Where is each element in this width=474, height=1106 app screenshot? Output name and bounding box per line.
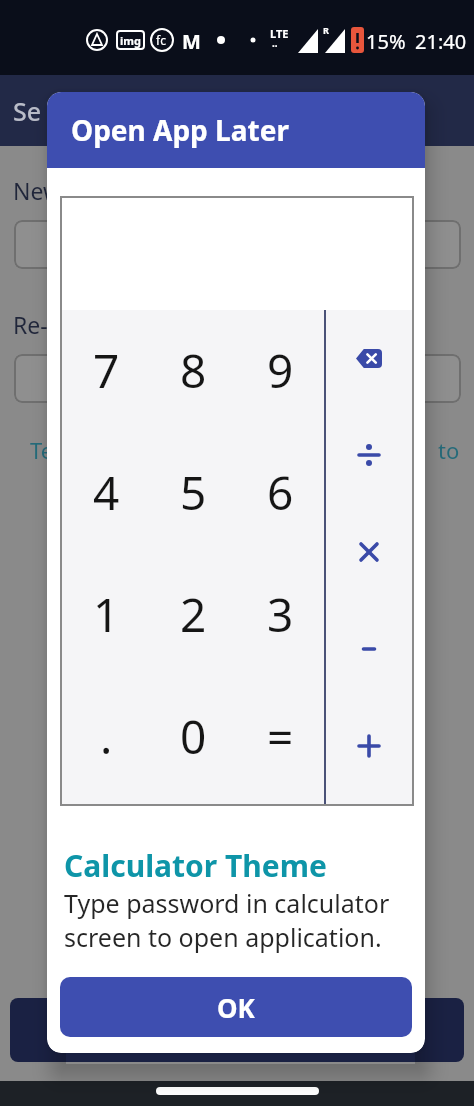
- staticText: Re-: [13, 309, 48, 340]
- button[interactable]: =: [237, 675, 324, 797]
- staticText: 9: [267, 339, 294, 402]
- staticText: ..: [272, 36, 278, 50]
- button[interactable]: 0: [150, 675, 237, 797]
- staticText: Open App Later: [71, 111, 289, 149]
- staticText: OK: [217, 990, 255, 1025]
- button[interactable]: 8: [150, 310, 237, 431]
- button[interactable]: 2: [150, 553, 237, 675]
- staticText: 21:40: [415, 28, 467, 55]
- staticText: 0: [180, 705, 207, 768]
- button[interactable]: 6: [237, 431, 324, 553]
- button[interactable]: [326, 310, 412, 406]
- staticText: 7: [93, 339, 120, 402]
- button[interactable]: 5: [150, 431, 237, 553]
- staticText: 15%: [366, 28, 406, 55]
- button[interactable]: 3: [237, 553, 324, 675]
- staticText: img: [120, 33, 141, 48]
- button[interactable]: [326, 697, 412, 794]
- staticText: 8: [180, 339, 207, 402]
- staticText: M: [182, 28, 201, 55]
- button[interactable]: 7: [62, 310, 150, 431]
- staticText: 2: [180, 583, 207, 646]
- staticText: Type password in calculator screen to op…: [64, 886, 390, 954]
- button[interactable]: [326, 503, 412, 600]
- staticText: fc: [156, 32, 166, 48]
- staticText: 4: [93, 461, 120, 524]
- button[interactable]: 4: [62, 431, 150, 553]
- staticText: LTE: [270, 26, 289, 41]
- button[interactable]: 9: [237, 310, 324, 431]
- staticText: 1: [93, 583, 120, 646]
- staticText: 6: [267, 461, 294, 524]
- button[interactable]: [326, 600, 412, 697]
- staticText: .: [100, 705, 113, 768]
- staticText: R: [323, 24, 329, 36]
- staticText: to: [438, 435, 460, 465]
- staticText: =: [267, 705, 294, 768]
- staticText: Te: [30, 435, 54, 465]
- staticText: Calculator Theme: [64, 845, 327, 886]
- button[interactable]: .: [62, 675, 150, 797]
- staticText: New: [13, 175, 62, 206]
- button[interactable]: OK: [60, 977, 412, 1037]
- button[interactable]: [326, 406, 412, 503]
- staticText: 5: [180, 461, 207, 524]
- staticText: Se: [13, 94, 42, 128]
- button[interactable]: 1: [62, 553, 150, 675]
- staticText: 3: [267, 583, 294, 646]
